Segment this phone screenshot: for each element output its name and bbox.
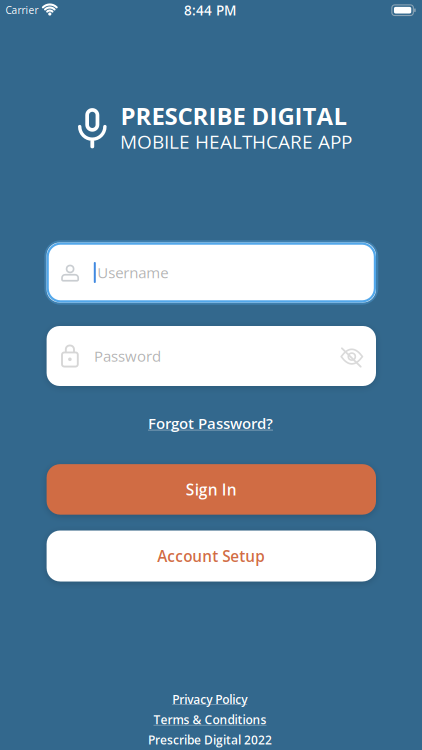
staticText: MOBILE HEALTHCARE APP: [120, 129, 352, 154]
button[interactable]: Forgot Password?: [148, 413, 273, 433]
button[interactable]: Sign In: [47, 464, 376, 515]
staticText: Sign In: [186, 479, 237, 500]
button[interactable]: Account Setup: [47, 530, 376, 581]
staticText: Account Setup: [157, 546, 265, 566]
staticText: Terms & Conditions: [153, 711, 266, 728]
staticText: Username: [97, 262, 168, 283]
button[interactable]: Username: [47, 242, 376, 302]
staticText: Prescribe Digital 2022: [148, 732, 272, 748]
button[interactable]: Show Password: [338, 342, 366, 370]
staticText: Privacy Policy: [172, 691, 247, 707]
button[interactable]: Terms & Conditions: [153, 711, 266, 728]
staticText: Forgot Password?: [148, 413, 273, 433]
staticText: PRESCRIBE DIGITAL: [120, 99, 347, 132]
button[interactable]: Privacy Policy: [172, 691, 247, 707]
staticText: 8:44 PM: [184, 1, 236, 19]
staticText: Carrier: [5, 3, 38, 17]
staticText: Password: [94, 346, 161, 366]
button[interactable]: Password: [47, 326, 376, 386]
